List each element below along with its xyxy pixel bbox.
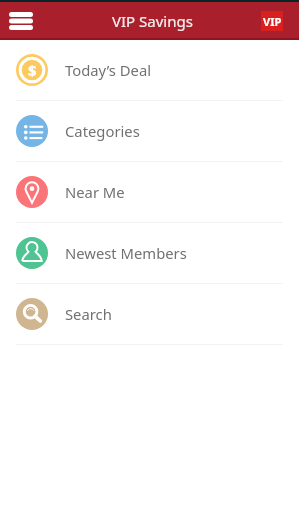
button[interactable]: Menu xyxy=(2,2,40,40)
button[interactable]: Search xyxy=(0,284,299,345)
staticText: Newest Members xyxy=(65,243,187,263)
button[interactable]: Near Me xyxy=(0,162,299,223)
button[interactable]: Categories xyxy=(0,101,299,162)
staticText: Today’s Deal xyxy=(65,60,152,80)
staticText: Categories xyxy=(65,121,140,141)
button[interactable]: $ xyxy=(0,40,299,101)
button[interactable]: Newest Members xyxy=(0,223,299,284)
staticText: VIP xyxy=(263,14,282,29)
staticText: VIP Savings xyxy=(112,11,193,31)
staticText: $ xyxy=(28,60,37,80)
staticText: Search xyxy=(65,304,112,324)
staticText: Near Me xyxy=(65,182,125,202)
button[interactable]: VIP xyxy=(261,11,283,31)
